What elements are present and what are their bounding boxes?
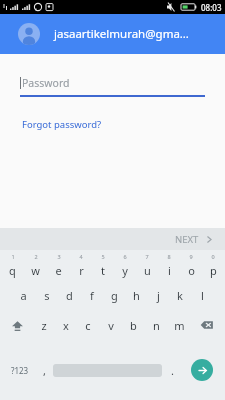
staticText: 6: [123, 253, 127, 260]
staticText: .: [171, 363, 174, 378]
button[interactable]: d: [58, 280, 81, 310]
staticText: Password: [22, 76, 70, 90]
staticText: 1: [11, 253, 15, 260]
button[interactable]: t: [92, 260, 114, 280]
button[interactable]: Backspace: [191, 310, 223, 340]
staticText: c: [85, 318, 91, 333]
button[interactable]: h: [125, 280, 147, 310]
staticText: w: [31, 263, 40, 278]
button[interactable]: i: [158, 260, 180, 280]
staticText: t: [101, 263, 105, 278]
button[interactable]: m: [168, 310, 191, 340]
staticText: 4: [79, 253, 83, 260]
staticText: 7: [145, 253, 149, 260]
staticText: v: [108, 318, 114, 333]
staticText: d: [66, 288, 73, 303]
button[interactable]: NEXT: [163, 233, 225, 246]
staticText: j: [157, 288, 160, 303]
staticText: x: [63, 318, 69, 333]
staticText: r: [79, 263, 84, 278]
staticText: 0: [211, 253, 215, 260]
button[interactable]: Forgot password?: [20, 116, 104, 133]
button[interactable]: s: [35, 280, 58, 310]
button[interactable]: .: [162, 344, 182, 396]
button[interactable]: y: [114, 260, 136, 280]
staticText: f: [90, 288, 94, 303]
button[interactable]: c: [77, 310, 99, 340]
staticText: m: [174, 318, 185, 333]
button[interactable]: f: [81, 280, 103, 310]
staticText: s: [44, 288, 50, 303]
staticText: q: [9, 263, 16, 278]
staticText: i: [168, 263, 171, 278]
button[interactable]: Enter: [191, 359, 213, 381]
staticText: 9: [189, 253, 193, 260]
button[interactable]: v: [99, 310, 122, 340]
button[interactable]: b: [122, 310, 145, 340]
button[interactable]: w: [24, 260, 47, 280]
staticText: e: [55, 263, 62, 278]
button[interactable]: ?123: [4, 344, 36, 396]
button[interactable]: p: [202, 260, 224, 280]
staticText: ,: [43, 363, 46, 378]
staticText: Forgot password?: [22, 118, 102, 131]
staticText: 5: [101, 253, 105, 260]
staticText: jasaartikelmurah@gma…: [54, 26, 189, 42]
button[interactable]: q: [1, 260, 24, 280]
button[interactable]: jasaartikelmurah@gma…: [0, 14, 225, 54]
button[interactable]: j: [147, 280, 169, 310]
staticText: o: [188, 263, 195, 278]
button[interactable]: ,: [36, 344, 53, 396]
button[interactable]: n: [145, 310, 168, 340]
button[interactable]: l: [191, 280, 213, 310]
staticText: b: [130, 318, 137, 333]
staticText: 8: [167, 253, 171, 260]
button[interactable]: r: [70, 260, 92, 280]
button[interactable]: k: [169, 280, 191, 310]
button[interactable]: x: [55, 310, 77, 340]
staticText: n: [153, 318, 160, 333]
button[interactable]: z: [33, 310, 55, 340]
button[interactable]: Password: [0, 76, 225, 97]
staticText: 2: [34, 253, 38, 260]
button[interactable]: a: [12, 280, 35, 310]
staticText: 08:03: [201, 2, 222, 13]
staticText: p: [210, 263, 217, 278]
staticText: l: [201, 288, 204, 303]
staticText: 3: [57, 253, 61, 260]
staticText: ?123: [11, 365, 29, 376]
staticText: h: [133, 288, 140, 303]
button[interactable]: u: [136, 260, 158, 280]
staticText: g: [111, 288, 118, 303]
staticText: y: [122, 263, 128, 278]
button[interactable]: g: [103, 280, 125, 310]
button[interactable]: o: [180, 260, 202, 280]
button[interactable]: e: [47, 260, 70, 280]
staticText: NEXT: [175, 233, 199, 246]
staticText: z: [41, 318, 47, 333]
button[interactable]: Shift: [2, 310, 33, 340]
staticText: k: [177, 288, 183, 303]
staticText: u: [144, 263, 151, 278]
staticText: a: [20, 288, 27, 303]
